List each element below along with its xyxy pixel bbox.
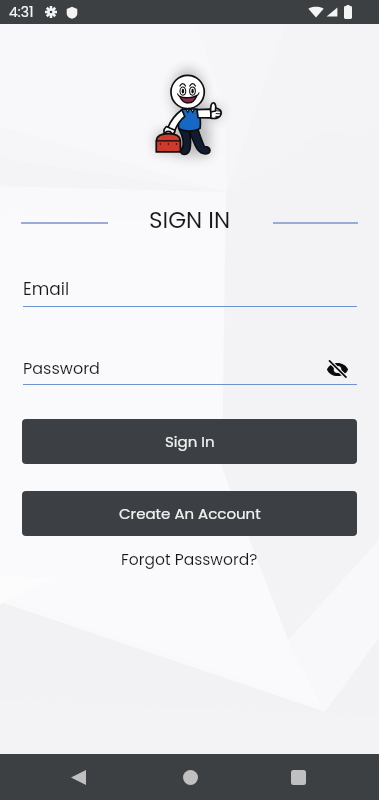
button[interactable]: Sign In: [22, 419, 357, 464]
staticText: 4:31: [9, 2, 34, 22]
button[interactable]: Forgot Password?: [121, 549, 258, 571]
staticText: SIGN IN: [149, 204, 231, 236]
button[interactable]: Recent apps: [275, 754, 321, 800]
staticText: Sign In: [165, 431, 215, 452]
button[interactable]: Create An Account: [22, 491, 357, 536]
button[interactable]: Back: [55, 754, 101, 800]
staticText: Password: [23, 357, 100, 379]
staticText: Email: [23, 277, 70, 301]
button[interactable]: Home: [167, 754, 213, 800]
staticText: Create An Account: [119, 503, 261, 524]
button[interactable]: Show password: [321, 353, 353, 385]
